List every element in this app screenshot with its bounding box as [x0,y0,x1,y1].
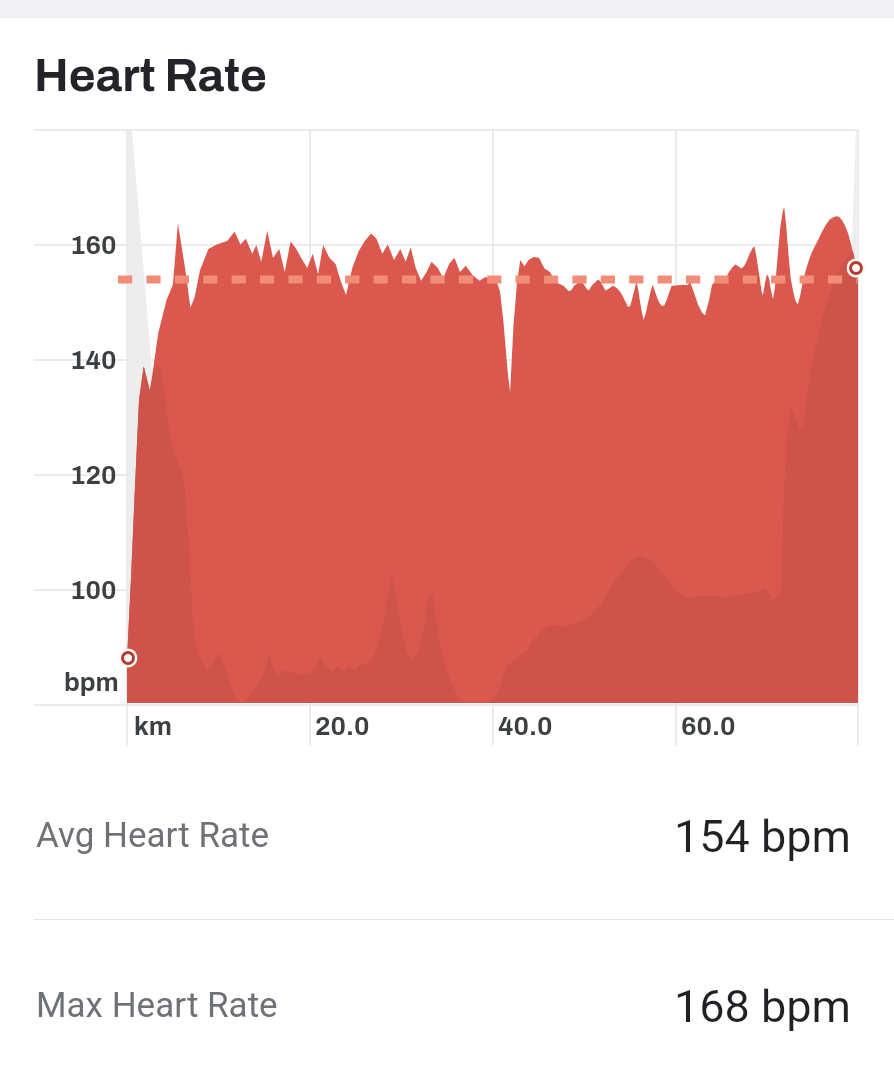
staticText: 160 [70,231,117,259]
staticText: Avg Heart Rate [36,815,270,856]
staticText: 20.0 [315,712,370,740]
button[interactable]: Max Heart Rate [0,920,894,1079]
button[interactable]: Avg Heart Rate [0,760,894,919]
staticText: Max Heart Rate [36,985,278,1026]
staticText: 168 bpm [674,980,852,1033]
staticText: km [134,712,172,740]
staticText: 60.0 [681,712,736,740]
staticText: 100 [70,576,117,604]
staticText: Heart Rate [34,51,267,101]
staticText: bpm [64,668,119,696]
staticText: 140 [70,346,117,374]
staticText: 120 [70,461,117,489]
staticText: 40.0 [498,712,553,740]
staticText: 154 bpm [674,810,852,863]
